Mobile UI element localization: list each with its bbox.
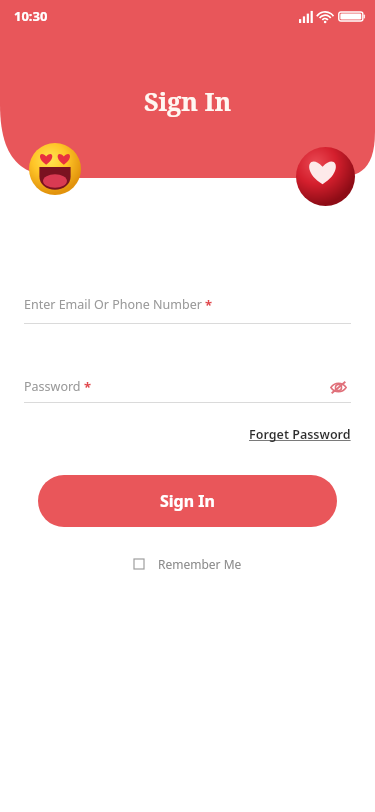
button[interactable]: Password (24, 378, 325, 396)
staticText: Enter Email Or Phone Number (24, 296, 202, 313)
staticText: Sign In (160, 490, 215, 512)
staticText: Sign In (144, 84, 232, 118)
staticText: Forget Password (249, 426, 351, 443)
button[interactable]: Remember Me (130, 552, 246, 576)
staticText: Remember Me (158, 556, 242, 572)
staticText: * (205, 296, 213, 314)
button[interactable]: Sign In (38, 475, 337, 527)
staticText: 10:30 (14, 7, 48, 25)
button[interactable]: Forget Password (249, 424, 351, 445)
staticText: Password (24, 378, 81, 395)
button[interactable]: Enter Email Or Phone Number (24, 296, 351, 324)
staticText: * (84, 378, 92, 396)
button[interactable]: Show password (325, 374, 351, 400)
